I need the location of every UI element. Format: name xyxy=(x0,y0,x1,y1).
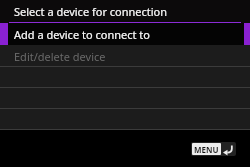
button[interactable]: Menu / Back xyxy=(191,142,236,156)
button[interactable] xyxy=(0,109,250,130)
button[interactable]: Edit/delete device xyxy=(0,45,250,67)
staticText: Select a device for connection xyxy=(14,4,168,19)
staticText: Edit/delete device xyxy=(14,49,106,64)
staticText: Add a device to connect to xyxy=(14,27,150,42)
button[interactable] xyxy=(0,88,250,109)
staticText: MENU xyxy=(194,144,219,155)
button[interactable]: Add a device to connect to xyxy=(0,23,250,45)
button[interactable] xyxy=(0,67,250,88)
